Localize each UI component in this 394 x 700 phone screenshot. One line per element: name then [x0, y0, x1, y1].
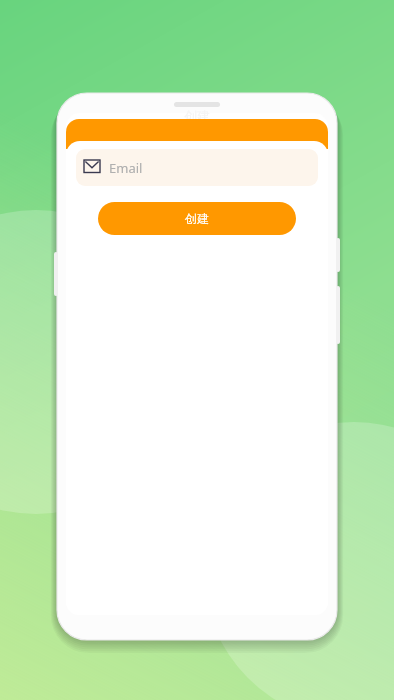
button[interactable] [98, 202, 296, 235]
button[interactable]: Email input [76, 149, 318, 186]
